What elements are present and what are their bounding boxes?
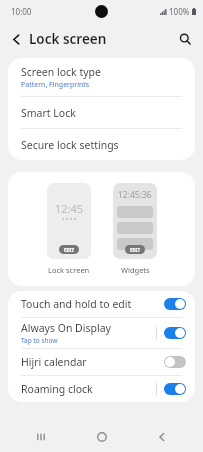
button[interactable]: Back bbox=[142, 422, 182, 452]
button[interactable]: Always On Display bbox=[164, 327, 186, 339]
staticText: Widgets bbox=[121, 265, 150, 275]
button[interactable]: Smart Lock bbox=[8, 97, 195, 128]
staticText: Touch and hold to edit bbox=[21, 297, 132, 311]
staticText: Screen lock type bbox=[21, 65, 101, 79]
button[interactable]: Hijri calendar bbox=[8, 349, 195, 375]
staticText: Hijri calendar bbox=[21, 355, 87, 369]
button[interactable]: Secure lock settings bbox=[8, 129, 195, 160]
button[interactable]: Recents bbox=[21, 422, 61, 452]
staticText: 100% bbox=[169, 6, 190, 17]
button[interactable]: Widgets bbox=[113, 183, 157, 259]
button[interactable]: Roaming clock bbox=[8, 376, 195, 402]
staticText: Pattern, Fingerprints bbox=[21, 80, 90, 90]
staticText: Roaming clock bbox=[21, 382, 93, 396]
button[interactable]: Lock screen bbox=[47, 183, 91, 259]
button[interactable]: Search bbox=[172, 26, 198, 52]
staticText: Lock screen bbox=[48, 265, 90, 275]
staticText: Tap to show bbox=[21, 336, 58, 345]
staticText: 12:45:36 bbox=[118, 189, 152, 201]
staticText: Always On Display bbox=[21, 321, 111, 335]
staticText: 12:45 bbox=[55, 201, 84, 216]
button[interactable]: Back bbox=[3, 26, 29, 52]
staticText: Lock screen bbox=[29, 30, 107, 48]
button[interactable]: Hijri calendar bbox=[164, 356, 186, 368]
button[interactable]: Roaming clock bbox=[164, 383, 186, 395]
button[interactable]: Touch and hold to edit bbox=[8, 291, 195, 317]
staticText: EDIT bbox=[64, 247, 75, 253]
staticText: Secure lock settings bbox=[21, 138, 119, 152]
staticText: EDIT bbox=[130, 247, 141, 253]
button[interactable]: Touch and hold to edit bbox=[164, 298, 186, 310]
button[interactable]: Screen lock type bbox=[8, 58, 195, 96]
button[interactable]: Always On Display bbox=[8, 318, 195, 348]
staticText: Smart Lock bbox=[21, 106, 76, 120]
staticText: 10:00 bbox=[11, 6, 32, 17]
button[interactable]: Home bbox=[82, 422, 122, 452]
